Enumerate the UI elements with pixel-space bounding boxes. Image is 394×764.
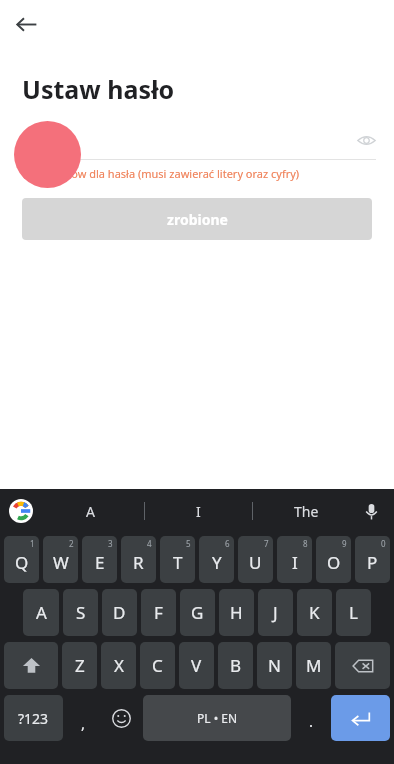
button[interactable]: Q [4, 536, 39, 583]
button[interactable]: N [257, 642, 292, 689]
staticText: B [230, 654, 242, 677]
staticText: 1 [30, 538, 35, 549]
staticText: Z [75, 654, 85, 677]
staticText: ?123 [18, 709, 49, 728]
staticText: H [230, 601, 243, 624]
staticText: 8 [303, 538, 308, 549]
staticText: A [36, 601, 47, 624]
staticText: S [76, 601, 86, 624]
staticText: L [349, 601, 358, 624]
staticText: A [86, 502, 95, 521]
button[interactable]: Y [199, 536, 234, 583]
staticText: T [173, 551, 183, 574]
button[interactable]: E [82, 536, 117, 583]
button[interactable]: W [43, 536, 78, 583]
button[interactable]: Show password [351, 125, 381, 155]
staticText: R [133, 551, 144, 574]
button[interactable]: S [63, 589, 98, 636]
staticText: U [249, 551, 262, 574]
staticText: PL • EN [197, 710, 238, 726]
staticText: K [309, 601, 320, 624]
staticText: 6 [225, 538, 230, 549]
button[interactable]: Comma [65, 695, 101, 741]
button[interactable]: Enter [331, 695, 390, 741]
button[interactable]: V [179, 642, 214, 689]
button[interactable]: A [23, 589, 59, 636]
staticText: G [191, 601, 204, 624]
staticText: 4 [147, 538, 152, 549]
staticText: D [113, 601, 126, 624]
button[interactable]: Shift [4, 642, 58, 689]
button[interactable]: F [141, 589, 176, 636]
button[interactable]: H [219, 589, 254, 636]
staticText: 0 [381, 538, 386, 549]
button[interactable]: U [238, 536, 273, 583]
button[interactable]: I [145, 489, 252, 533]
button[interactable]: D [102, 589, 137, 636]
staticText: F [154, 601, 163, 624]
staticText: W [53, 551, 69, 574]
button[interactable]: Period [293, 695, 329, 741]
button[interactable]: L [336, 589, 371, 636]
button[interactable]: R [121, 536, 156, 583]
staticText: zrobione [167, 210, 228, 229]
staticText: , [81, 713, 86, 733]
button[interactable]: J [258, 589, 293, 636]
staticText: . [309, 711, 314, 731]
button[interactable]: X [101, 642, 136, 689]
button[interactable]: The [253, 489, 360, 533]
button[interactable]: O [316, 536, 351, 583]
button[interactable]: Emoji [101, 695, 141, 741]
staticText: 3 [108, 538, 113, 549]
staticText: V [191, 654, 202, 677]
button[interactable]: zrobione [22, 198, 372, 240]
staticText: E [95, 551, 105, 574]
button[interactable]: PL • EN [143, 695, 291, 741]
staticText: 7 [264, 538, 269, 549]
button[interactable]: M [296, 642, 331, 689]
staticText: I [196, 502, 201, 521]
button[interactable]: Google [8, 498, 34, 524]
staticText: 5 [186, 538, 191, 549]
staticText: X [114, 654, 124, 677]
staticText: I [292, 551, 298, 574]
button[interactable]: Back [9, 7, 43, 41]
staticText: C [152, 654, 163, 677]
staticText: J [273, 601, 278, 624]
button[interactable]: B [218, 642, 253, 689]
button[interactable]: K [297, 589, 332, 636]
staticText: The [294, 502, 319, 521]
staticText: P [367, 551, 378, 574]
staticText: M [306, 654, 322, 677]
button[interactable]: Z [62, 642, 97, 689]
button[interactable]: P [355, 536, 390, 583]
button[interactable]: G [180, 589, 215, 636]
button[interactable]: I [277, 536, 312, 583]
staticText: O [327, 551, 341, 574]
staticText: 6-20 znaków dla hasła (musi zawierać lit… [22, 166, 300, 181]
button[interactable]: Backspace [335, 642, 390, 689]
button[interactable]: C [140, 642, 175, 689]
staticText: Ustaw hasło [22, 72, 175, 106]
staticText: N [268, 654, 281, 677]
staticText: 9 [342, 538, 347, 549]
staticText: 2 [69, 538, 74, 549]
staticText: Q [15, 551, 29, 574]
staticText: Y [212, 551, 222, 574]
button[interactable]: Voice input [358, 498, 384, 524]
button[interactable]: A [36, 489, 144, 533]
button[interactable]: ?123 [4, 695, 63, 741]
button[interactable]: T [160, 536, 195, 583]
